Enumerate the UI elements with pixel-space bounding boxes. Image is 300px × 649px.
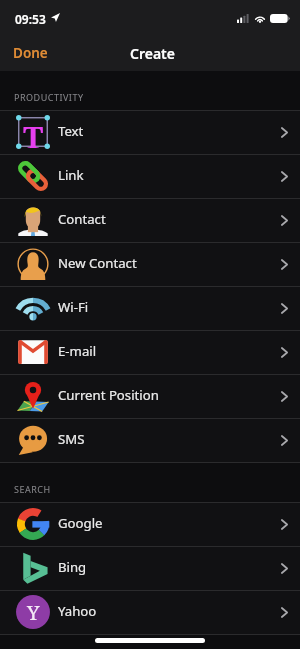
button[interactable]: Google (0, 503, 300, 546)
button[interactable]: New Contact (0, 243, 300, 286)
staticText: PRODUCTIVITY (14, 91, 84, 103)
staticText: Link (58, 166, 84, 184)
button[interactable]: Y (0, 591, 300, 634)
staticText: Create (130, 44, 175, 63)
staticText: Bing (58, 558, 87, 576)
button[interactable]: SMS (0, 419, 300, 462)
staticText: 09:53 (15, 11, 46, 27)
button[interactable]: Contact (0, 199, 300, 242)
staticText: New Contact (58, 254, 137, 272)
staticText: E-mail (58, 342, 97, 360)
button[interactable]: T (0, 111, 300, 154)
staticText: Yahoo (58, 602, 97, 620)
button[interactable]: Bing (0, 547, 300, 590)
staticText: SEARCH (14, 483, 51, 495)
staticText: T (23, 116, 44, 148)
staticText: Text (58, 122, 84, 140)
staticText: Current Position (58, 386, 159, 404)
staticText: Google (58, 514, 103, 532)
staticText: SMS (58, 430, 85, 448)
staticText: Wi-Fi (58, 298, 89, 316)
button[interactable]: Current Position (0, 375, 300, 418)
staticText: Contact (58, 210, 106, 228)
staticText: Done (13, 44, 48, 62)
button[interactable]: Link (0, 155, 300, 198)
button[interactable]: E-mail (0, 331, 300, 374)
button[interactable]: Done (0, 37, 61, 69)
button[interactable]: Wi-Fi (0, 287, 300, 330)
staticText: Y (27, 599, 40, 626)
